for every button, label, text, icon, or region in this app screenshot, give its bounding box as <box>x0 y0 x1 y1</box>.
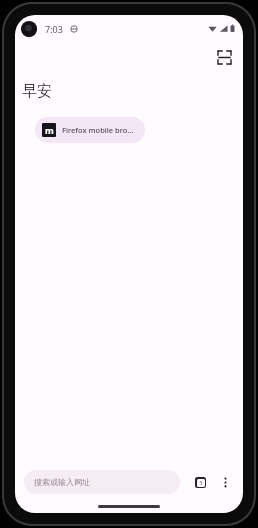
staticText: m <box>45 124 54 136</box>
button[interactable]: More options <box>214 471 236 493</box>
staticText: 搜索或输入网址 <box>34 477 90 487</box>
staticText: 1 <box>199 479 203 487</box>
button[interactable]: Scan QR code <box>211 44 237 70</box>
staticText: 7:03 <box>45 23 63 35</box>
staticText: Firefox mobile bro… <box>62 125 134 135</box>
staticText: 早安 <box>22 82 52 101</box>
button[interactable]: Tabs: 1 open <box>189 471 211 493</box>
button[interactable]: m <box>35 117 145 143</box>
button[interactable]: 搜索或输入网址 <box>24 470 180 494</box>
